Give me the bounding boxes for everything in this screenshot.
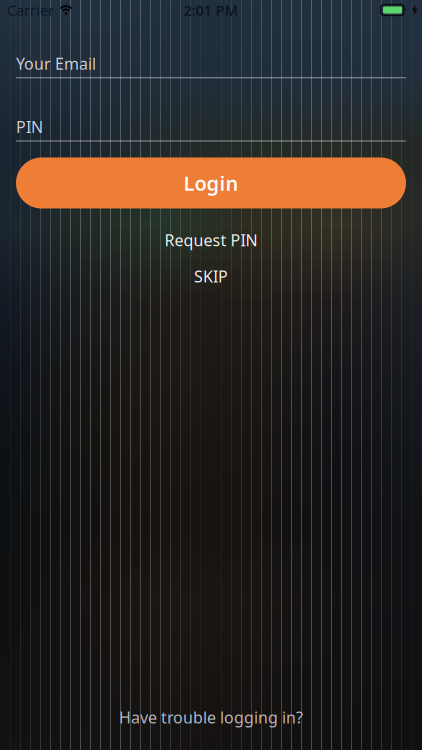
staticText: SKIP: [194, 266, 228, 287]
staticText: 2:01 PM: [183, 0, 238, 20]
staticText: Carrier: [7, 0, 54, 20]
staticText: Request PIN: [164, 229, 257, 251]
staticText: Your Email: [16, 53, 96, 74]
button[interactable]: SKIP: [194, 266, 228, 287]
button[interactable]: Request PIN: [164, 229, 257, 251]
staticText: PIN: [16, 116, 43, 137]
button[interactable]: Login: [0, 157, 422, 208]
staticText: Login: [183, 170, 238, 196]
staticText: Have trouble logging in?: [119, 707, 303, 728]
button[interactable]: Have trouble logging in?: [119, 707, 303, 728]
